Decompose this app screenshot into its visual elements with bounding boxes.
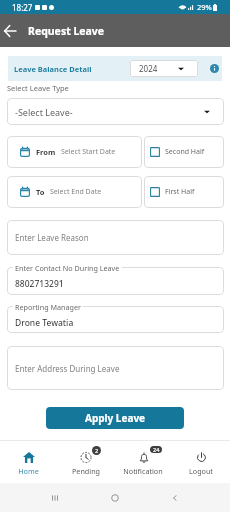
staticText: Enter Contact No During Leave (15, 263, 120, 273)
button[interactable]: First Half (144, 176, 224, 208)
button[interactable]: -Select Leave- (7, 98, 224, 125)
staticText: Apply Leave (85, 411, 146, 425)
staticText: Select End Date (50, 187, 102, 197)
staticText: -Select Leave- (15, 106, 73, 118)
button[interactable]: Enter Address During Leave (7, 346, 224, 390)
button[interactable]: From (7, 136, 142, 168)
button[interactable]: Second Half (144, 136, 224, 168)
staticText: Second Half (165, 147, 205, 157)
button[interactable]: 2024 (130, 60, 198, 77)
staticText: Select Leave Type (7, 83, 69, 93)
staticText: Logout (189, 466, 213, 476)
button[interactable]: 24 (114, 441, 172, 483)
staticText: Notification (123, 466, 163, 476)
button[interactable]: To (7, 176, 142, 208)
staticText: Pending (72, 466, 100, 476)
staticText: 18:27 (12, 2, 33, 13)
button[interactable]: Apply Leave (46, 407, 184, 429)
staticText: From (36, 147, 56, 157)
button[interactable]: Enter Leave Reason (7, 220, 224, 255)
button[interactable] (7, 267, 224, 295)
staticText: 24 (153, 446, 160, 453)
staticText: 8802713291 (15, 278, 64, 290)
staticText: 2 (95, 447, 99, 454)
staticText: Select Start Date (61, 147, 116, 157)
button[interactable]: Back (1, 14, 18, 47)
button[interactable]: Logout (172, 441, 230, 483)
staticText: Leave Balance Detail (14, 64, 92, 74)
staticText: First Half (165, 187, 195, 197)
staticText: Home (18, 466, 39, 476)
button[interactable]: 2 (57, 441, 114, 483)
staticText: 2024 (139, 63, 158, 74)
button[interactable]: Home (0, 441, 57, 483)
staticText: To (36, 187, 45, 197)
staticText: Request Leave (28, 24, 105, 38)
staticText: Reporting Manager (15, 302, 81, 312)
staticText: 29% (197, 2, 212, 12)
staticText: Enter Address During Leave (15, 363, 120, 374)
button[interactable]: Info (209, 63, 220, 74)
staticText: Drone Tewatia (15, 317, 74, 329)
button[interactable] (7, 306, 224, 333)
staticText: Enter Leave Reason (15, 232, 89, 243)
